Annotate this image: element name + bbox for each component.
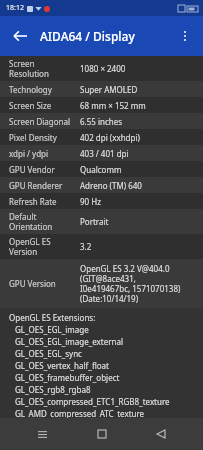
button[interactable]: OpenGL ES Version: [0, 234, 203, 259]
button[interactable]: xdpi / ydpi: [0, 145, 203, 161]
button[interactable]: GPU Renderer: [0, 177, 203, 193]
button[interactable]: Technology: [0, 81, 203, 97]
staticText: OpenGL ES Version: [9, 236, 79, 257]
staticText: AIDA64 / Display: [40, 28, 135, 44]
staticText: GL_OES_compressed_ETC1_RGB8_texture: [15, 396, 170, 408]
button[interactable]: More options: [173, 24, 197, 48]
staticText: Pixel Density: [9, 132, 79, 143]
staticText: GL_OES_rgb8_rgba8: [15, 384, 91, 396]
staticText: 6.55 inches: [80, 116, 123, 127]
staticText: 1080 × 2400: [80, 63, 126, 74]
staticText: GL_OES_vertex_half_float: [15, 360, 109, 372]
staticText: GL_OES_EGL_image_external: [15, 336, 124, 348]
staticText: Qualcomm: [80, 164, 122, 175]
staticText: Screen Resolution: [9, 58, 79, 79]
staticText: Super AMOLED: [80, 84, 138, 95]
button[interactable]: Pixel Density: [0, 129, 203, 145]
staticText: GPU Renderer: [9, 180, 79, 191]
staticText: 90 Hz: [80, 196, 101, 207]
button[interactable]: Screen Size: [0, 97, 203, 113]
button[interactable]: Refresh Rate: [0, 193, 203, 209]
staticText: 3.2: [80, 241, 92, 252]
staticText: GL_OES_framebuffer_object: [15, 372, 120, 384]
staticText: GPU Vendor: [9, 164, 79, 175]
button[interactable]: Screen Diagonal: [0, 113, 203, 129]
button[interactable]: Back: [8, 24, 32, 48]
button[interactable]: GPU Vendor: [0, 161, 203, 177]
button[interactable]: Back: [143, 418, 179, 450]
button[interactable]: GPU Version: [0, 259, 203, 308]
staticText: 18:12: [6, 3, 24, 13]
button[interactable]: Home: [84, 418, 120, 450]
staticText: Screen Size: [9, 100, 79, 111]
staticText: GL_AMD_compressed_ATC_texture: [15, 408, 145, 418]
staticText: 68 mm × 152 mm: [80, 100, 146, 111]
staticText: GL_OES_EGL_sync: [15, 348, 82, 360]
staticText: 402 dpi (xxhdpi): [80, 132, 140, 143]
staticText: Refresh Rate: [9, 196, 79, 207]
staticText: OpenGL ES 3.2 V@404.0 (GIT@8ace431, I0e4…: [80, 263, 181, 304]
button[interactable]: Recents: [24, 418, 60, 450]
staticText: xdpi / ydpi: [9, 148, 79, 159]
button[interactable]: Default Orientation: [0, 209, 203, 234]
staticText: Screen Diagonal: [9, 116, 79, 127]
staticText: 403 / 401 dpi: [80, 148, 129, 159]
staticText: Technology: [9, 84, 79, 95]
staticText: Default Orientation: [9, 211, 79, 232]
button[interactable]: Screen Resolution: [0, 56, 203, 81]
staticText: Adreno (TM) 640: [80, 180, 142, 191]
staticText: GL_OES_EGL_image: [15, 324, 89, 336]
staticText: GPU Version: [9, 278, 79, 289]
staticText: Portrait: [80, 216, 109, 227]
staticText: OpenGL ES Extensions:: [9, 312, 96, 323]
